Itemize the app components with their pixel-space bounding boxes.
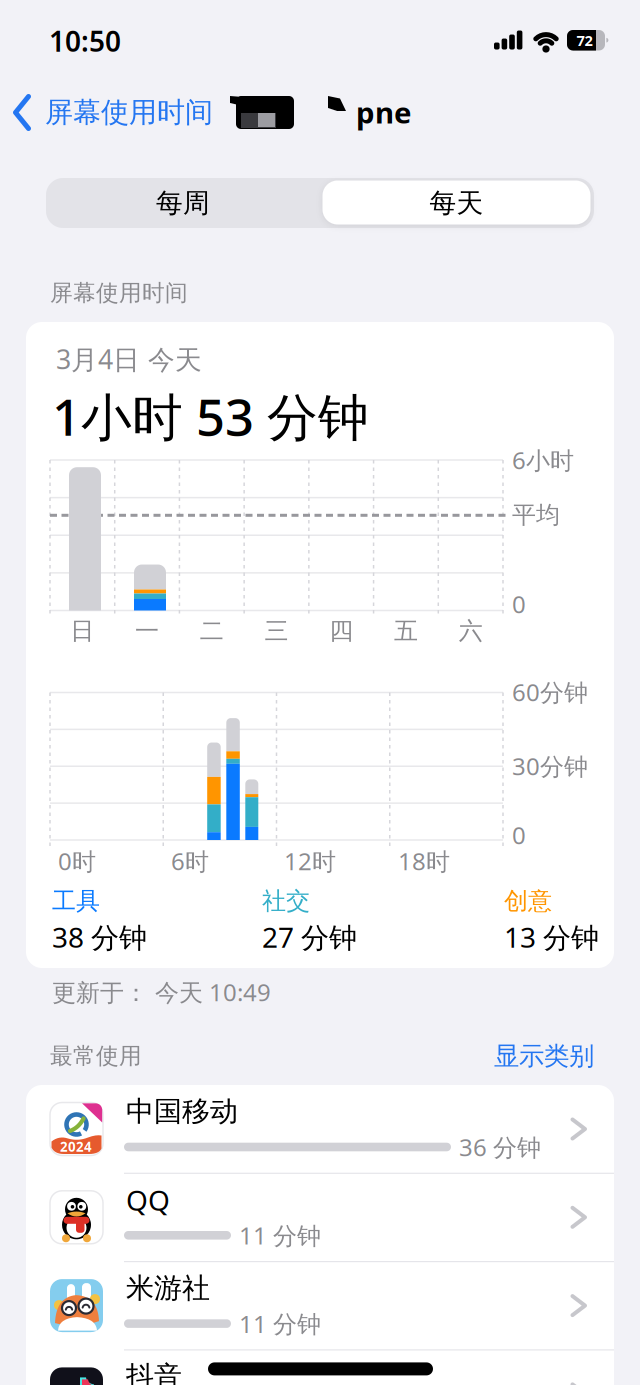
- staticText: 最常使用: [50, 1042, 142, 1070]
- staticText: 屏幕使用时间: [50, 279, 188, 307]
- staticText: 四: [329, 616, 353, 646]
- button[interactable]: 抖音: [26, 1350, 614, 1385]
- button[interactable]: QQ: [26, 1173, 614, 1262]
- button[interactable]: 每周: [48, 178, 318, 228]
- staticText: 6时: [171, 845, 209, 877]
- staticText: 一: [135, 616, 159, 646]
- staticText: QQ: [126, 1181, 170, 1218]
- staticText: 3月4日 今天: [56, 341, 202, 377]
- staticText: 36 分钟: [459, 1131, 541, 1163]
- staticText: 创意: [504, 886, 552, 916]
- staticText: 0: [512, 819, 526, 851]
- staticText: 30分钟: [512, 750, 588, 782]
- staticText: 每周: [156, 187, 210, 219]
- staticText: 五: [394, 616, 418, 646]
- staticText: 更新于： 今天 10:49: [52, 976, 271, 1008]
- staticText: 11 分钟: [239, 1219, 321, 1251]
- staticText: 0: [512, 588, 526, 620]
- button[interactable]: 米游社: [26, 1262, 614, 1350]
- staticText: 抖音: [126, 1359, 182, 1385]
- staticText: 社交: [262, 886, 310, 916]
- staticText: 27 分钟: [262, 918, 357, 956]
- staticText: 日: [70, 616, 94, 646]
- staticText: 12时: [284, 845, 336, 877]
- staticText: 1小时 53 分钟: [52, 382, 369, 450]
- staticText: 72: [576, 30, 592, 50]
- staticText: 显示类别: [494, 1040, 594, 1071]
- button[interactable]: 显示类别: [434, 1036, 594, 1076]
- staticText: 18时: [398, 845, 450, 877]
- staticText: 38 分钟: [52, 918, 147, 956]
- staticText: 10:50: [49, 22, 121, 60]
- staticText: 平均: [512, 500, 560, 530]
- button[interactable]: 每天: [321, 178, 591, 228]
- staticText: 6小时: [512, 444, 574, 476]
- staticText: 三: [264, 616, 288, 646]
- staticText: pne: [356, 92, 412, 131]
- staticText: 六: [459, 616, 483, 646]
- staticText: 11 分钟: [239, 1308, 321, 1340]
- staticText: 每天: [429, 187, 483, 219]
- staticText: 屏幕使用时间: [45, 95, 213, 130]
- button[interactable]: 中国移动: [26, 1085, 614, 1173]
- staticText: 0时: [58, 845, 96, 877]
- staticText: 13 分钟: [504, 918, 599, 956]
- staticText: 米游社: [126, 1271, 210, 1305]
- button[interactable]: 屏幕使用时间: [10, 92, 275, 132]
- staticText: 2024: [60, 1138, 92, 1155]
- staticText: 工具: [52, 886, 100, 916]
- staticText: 中国移动: [126, 1094, 238, 1129]
- staticText: 60分钟: [512, 676, 588, 708]
- staticText: 二: [200, 616, 224, 646]
